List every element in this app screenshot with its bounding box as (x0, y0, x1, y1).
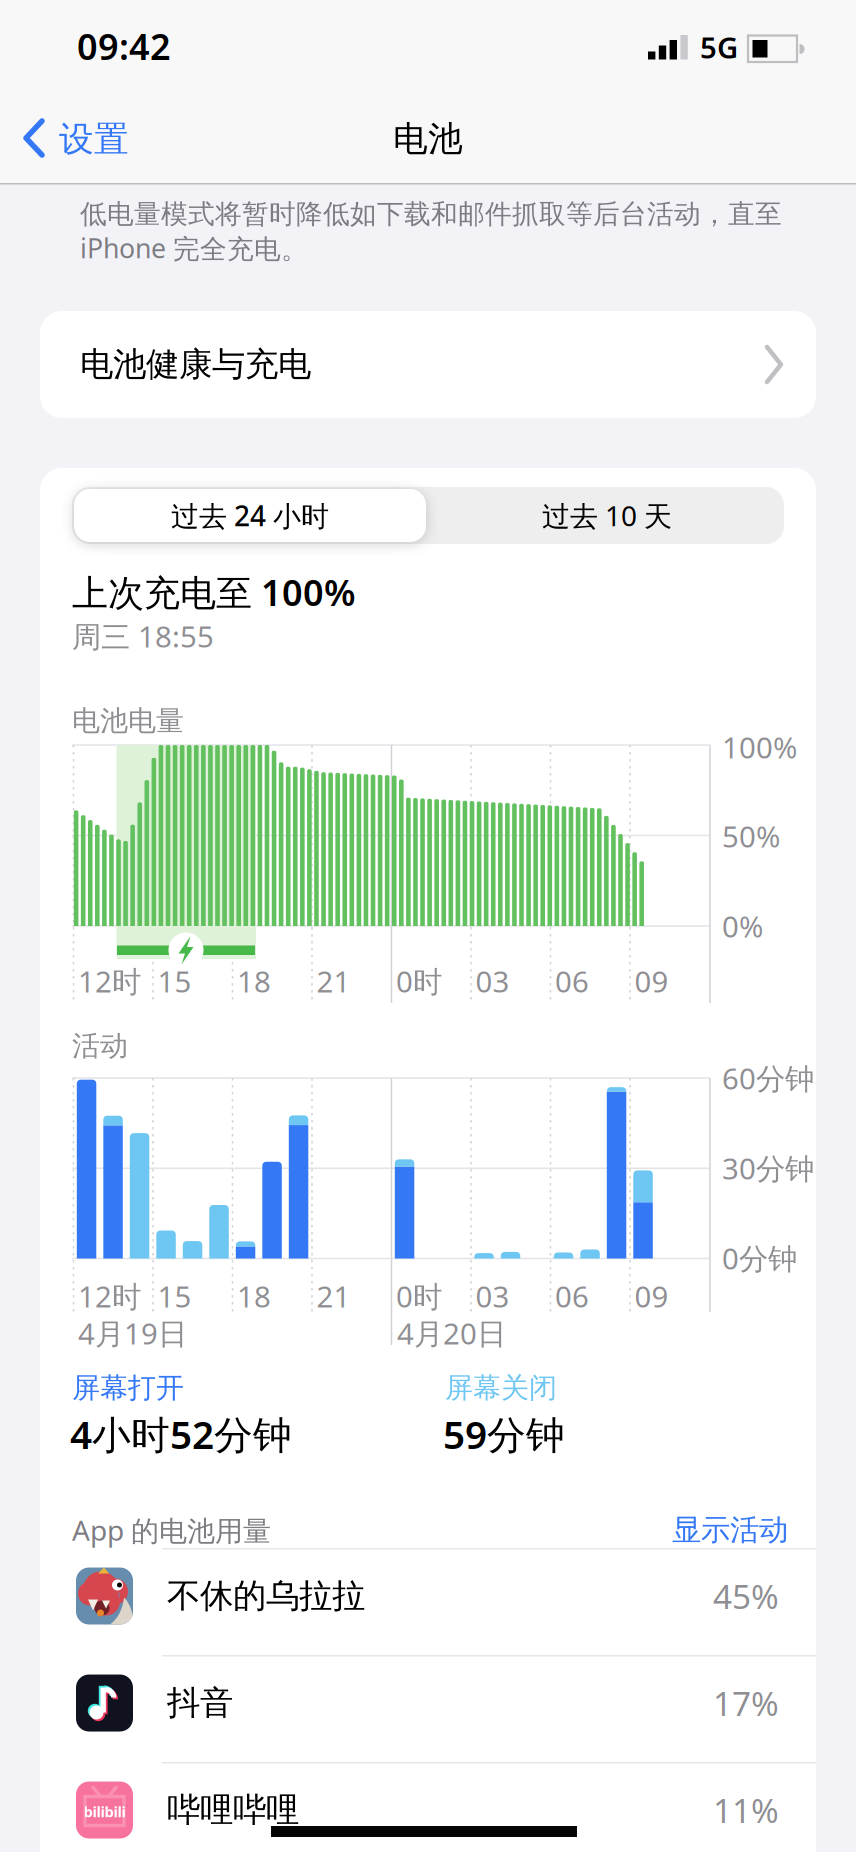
staticText: 屏幕关闭 (445, 1371, 557, 1405)
button[interactable]: 过去 10 天 (430, 487, 784, 544)
staticText: 周三 18:55 (72, 616, 214, 655)
staticText: 0% (722, 906, 763, 945)
staticText: 活动 (72, 1029, 128, 1063)
staticText: 11% (713, 1788, 779, 1832)
staticText: 5G (700, 27, 738, 66)
staticText: 不休的乌拉拉 (167, 1575, 365, 1616)
staticText: 低电量模式将暂时降低如下载和邮件抓取等后台活动，直至 (80, 198, 782, 230)
staticText: 电池 (393, 118, 463, 160)
staticText: 18 (237, 1276, 271, 1315)
button[interactable]: 过去 24 小时 (74, 489, 426, 542)
staticText: 21 (316, 1276, 350, 1315)
staticText: bilibili (83, 1802, 125, 1821)
staticText: 4月19日 (78, 1313, 187, 1352)
staticText: 上次充电至 100% (72, 568, 356, 616)
staticText: 21 (316, 961, 350, 1000)
staticText: 100% (722, 727, 797, 766)
staticText: 18 (237, 961, 271, 1000)
staticText: 过去 10 天 (542, 497, 672, 534)
staticText: 45% (713, 1574, 779, 1618)
staticText: 电池健康与充电 (80, 344, 311, 385)
staticText: 06 (555, 1276, 589, 1315)
staticText: 09 (634, 1276, 668, 1315)
staticText: 03 (475, 1276, 509, 1315)
staticText: 0时 (396, 1276, 442, 1315)
staticText: 0分钟 (722, 1238, 797, 1277)
button[interactable]: 设置 (22, 117, 162, 161)
staticText: 过去 24 小时 (171, 497, 329, 534)
staticText: 09:42 (77, 22, 171, 70)
staticText: 03 (475, 961, 509, 1000)
staticText: 15 (157, 961, 191, 1000)
staticText: 12时 (78, 1276, 141, 1315)
staticText: 哔哩哔哩 (167, 1789, 299, 1830)
staticText: 06 (555, 961, 589, 1000)
staticText: 59分钟 (443, 1408, 565, 1460)
staticText: 设置 (59, 118, 129, 161)
staticText: 显示活动 (672, 1512, 788, 1548)
staticText: 电池电量 (72, 704, 184, 738)
button[interactable]: 电池健康与充电 (40, 311, 816, 418)
staticText: 抖音 (167, 1682, 233, 1723)
staticText: 09 (634, 961, 668, 1000)
staticText: 屏幕打开 (72, 1371, 184, 1405)
button[interactable]: 抖音 (40, 1650, 816, 1756)
staticText: 50% (722, 816, 780, 855)
button[interactable]: 显示活动 (0, 0, 856, 1852)
staticText: 4月20日 (397, 1313, 506, 1352)
staticText: 15 (157, 1276, 191, 1315)
button[interactable]: bilibili (40, 1757, 816, 1852)
staticText: iPhone 完全充电。 (80, 230, 308, 266)
button[interactable]: 不休的乌拉拉 (40, 1543, 816, 1649)
staticText: 0时 (396, 961, 442, 1000)
staticText: 30分钟 (722, 1148, 814, 1187)
staticText: App 的电池用量 (72, 1511, 271, 1549)
staticText: 17% (713, 1681, 779, 1725)
staticText: 60分钟 (722, 1058, 814, 1097)
staticText: 4小时52分钟 (70, 1408, 292, 1460)
staticText: 12时 (78, 961, 141, 1000)
